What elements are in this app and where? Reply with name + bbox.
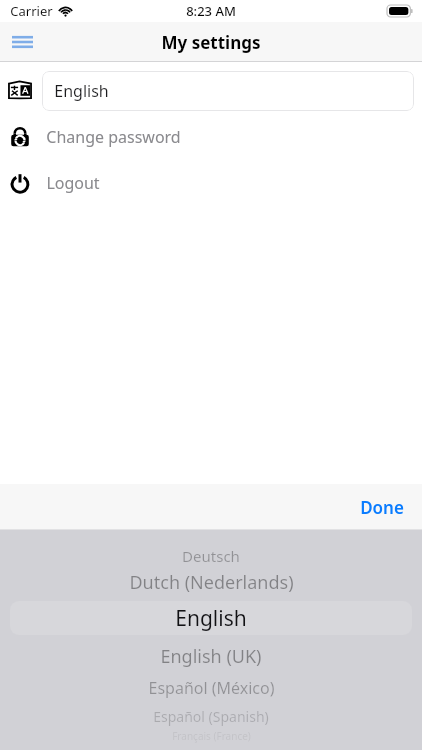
staticText: Français (France) [172,729,251,743]
staticText: English [54,80,109,102]
staticText: English [175,604,247,632]
button[interactable]: Logout [0,165,422,200]
staticText: Done [360,496,404,519]
button[interactable]: Change password [0,119,422,154]
staticText: Deutsch [182,546,240,566]
staticText: Dutch (Nederlands) [129,570,294,595]
staticText: Logout [46,172,100,194]
button[interactable]: Menu [0,22,44,62]
staticText: English (UK) [160,644,262,669]
staticText: Español (México) [148,677,275,699]
staticText: Carrier [10,2,53,20]
staticText: My settings [161,31,261,54]
staticText: 8:23 AM [186,2,236,20]
button[interactable]: Deutsch [0,530,422,750]
staticText: Change password [46,126,181,148]
staticText: Español (Spanish) [153,707,269,726]
button[interactable]: Done [352,490,412,525]
button[interactable]: English [0,71,422,111]
